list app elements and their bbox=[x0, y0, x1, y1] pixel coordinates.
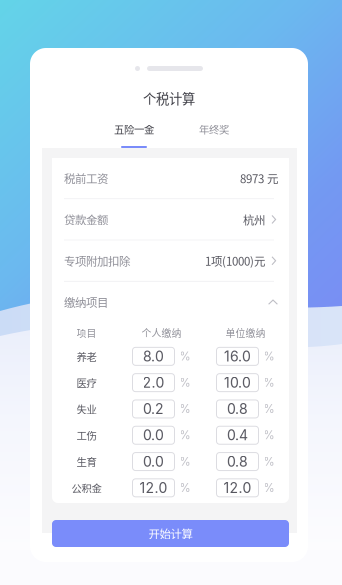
staticText: 开始计算 bbox=[148, 525, 192, 542]
staticText: 2.0 bbox=[142, 374, 164, 391]
staticText: % bbox=[263, 349, 274, 363]
staticText: 工伤 bbox=[76, 428, 96, 443]
staticText: 1项(1000)元 bbox=[205, 252, 265, 269]
staticText: 医疗 bbox=[76, 375, 96, 390]
staticText: % bbox=[179, 402, 190, 416]
button[interactable]: 缴纳项目 bbox=[52, 282, 289, 322]
staticText: 年终奖 bbox=[199, 121, 229, 137]
staticText: 8.0 bbox=[143, 348, 164, 365]
staticText: % bbox=[263, 428, 274, 442]
staticText: 贷款金额 bbox=[64, 211, 108, 228]
staticText: 0.0 bbox=[143, 453, 164, 470]
staticText: 0.8 bbox=[227, 453, 248, 470]
staticText: 12.0 bbox=[139, 479, 167, 496]
staticText: 公积金 bbox=[71, 480, 101, 495]
staticText: 16.0 bbox=[224, 348, 251, 365]
staticText: % bbox=[263, 455, 274, 468]
button[interactable]: 贷款金额 bbox=[52, 199, 289, 240]
staticText: % bbox=[179, 455, 190, 468]
staticText: % bbox=[179, 349, 190, 363]
staticText: 税前工资 bbox=[64, 170, 108, 186]
staticText: 10.0 bbox=[224, 374, 251, 391]
staticText: 8973 元 bbox=[240, 170, 278, 186]
button[interactable]: 税前工资 bbox=[52, 158, 289, 198]
staticText: 0.0 bbox=[143, 427, 164, 444]
staticText: 0.8 bbox=[227, 400, 248, 417]
button[interactable]: 专项附加扣除 bbox=[52, 241, 289, 281]
staticText: 项目 bbox=[76, 326, 96, 340]
staticText: 缴纳项目 bbox=[64, 294, 108, 310]
staticText: % bbox=[263, 481, 274, 495]
staticText: 五险一金 bbox=[114, 121, 154, 137]
staticText: 养老 bbox=[76, 349, 96, 364]
staticText: 0.4 bbox=[227, 427, 248, 444]
staticText: % bbox=[179, 428, 190, 442]
staticText: 个税计算 bbox=[143, 88, 195, 108]
staticText: % bbox=[179, 481, 190, 495]
staticText: 失业 bbox=[76, 401, 96, 416]
staticText: 个人缴纳 bbox=[141, 326, 181, 340]
staticText: 专项附加扣除 bbox=[64, 252, 130, 269]
button[interactable]: 开始计算 bbox=[52, 520, 289, 547]
button[interactable]: 五险一金 bbox=[104, 122, 164, 148]
staticText: 单位缴纳 bbox=[225, 326, 265, 340]
button[interactable]: 年终奖 bbox=[184, 122, 244, 136]
staticText: 杭州 bbox=[243, 211, 265, 228]
staticText: 生育 bbox=[76, 454, 96, 469]
staticText: % bbox=[263, 402, 274, 416]
staticText: % bbox=[179, 376, 190, 389]
staticText: % bbox=[263, 376, 274, 389]
staticText: 0.2 bbox=[143, 400, 164, 417]
staticText: 12.0 bbox=[223, 479, 251, 496]
